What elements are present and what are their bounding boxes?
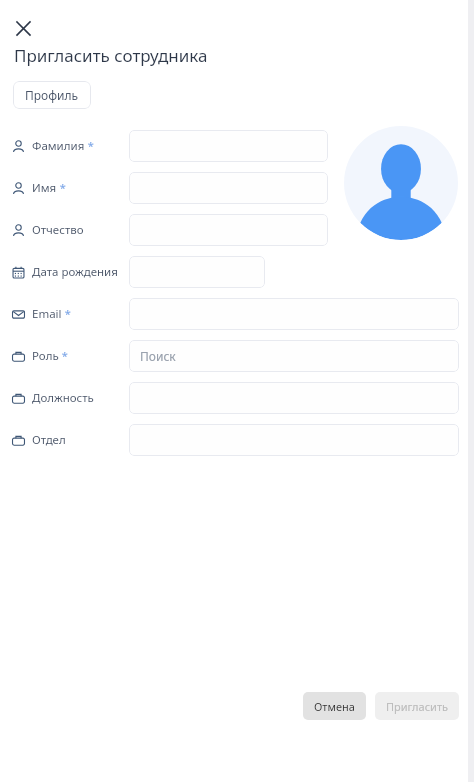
staticText: Пригласить сотрудника <box>14 44 208 67</box>
button[interactable]: Роль <box>129 340 459 372</box>
staticText: * <box>59 348 68 363</box>
staticText: Пригласить <box>386 699 449 714</box>
button[interactable]: Отмена <box>303 692 366 720</box>
staticText: * <box>85 138 94 153</box>
staticText: Отдел <box>32 432 66 448</box>
staticText: * <box>57 180 66 195</box>
button[interactable]: Отчество <box>129 214 328 246</box>
button[interactable]: Фамилия <box>129 130 328 162</box>
button[interactable]: Отдел <box>129 424 459 456</box>
button[interactable]: Close <box>8 13 38 43</box>
staticText: * <box>62 306 71 321</box>
button[interactable]: Email <box>129 298 459 330</box>
staticText: Роль <box>32 348 59 364</box>
staticText: Поиск <box>140 348 176 364</box>
staticText: Отчество <box>32 222 84 238</box>
staticText: Имя <box>32 180 57 196</box>
button[interactable]: Профиль <box>13 81 91 109</box>
staticText: Должность <box>32 390 94 406</box>
staticText: Email <box>32 306 62 322</box>
button[interactable]: Дата рождения <box>129 256 265 288</box>
staticText: Отмена <box>314 699 355 714</box>
staticText: Фамилия <box>32 138 85 154</box>
button[interactable]: Пригласить <box>375 692 459 720</box>
button[interactable]: Фото сотрудника <box>344 126 458 240</box>
button[interactable]: Имя <box>129 172 328 204</box>
staticText: Профиль <box>25 87 79 103</box>
button[interactable]: Должность <box>129 382 459 414</box>
staticText: Дата рождения <box>32 264 118 280</box>
